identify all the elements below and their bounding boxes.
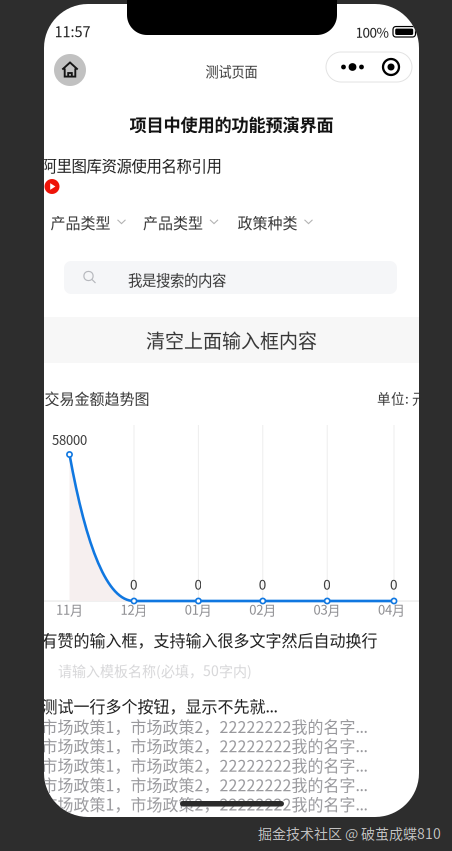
staticText: 11:57 bbox=[54, 20, 90, 41]
staticText: 有赞的输入框，支持输入很多文字然后自动换行 bbox=[41, 628, 377, 651]
button[interactable]: 产品类型 bbox=[50, 209, 126, 235]
staticText: 请输入模板名称(必填，50字内) bbox=[58, 660, 252, 680]
staticText: 测试一行多个按钮，显示不先就... bbox=[41, 694, 277, 717]
staticText: 12月 bbox=[120, 600, 147, 618]
staticText: 市场政策1，市场政策2，22222222我的名字... bbox=[41, 753, 367, 776]
staticText: 市场政策1，市场政策2，22222222我的名字... bbox=[41, 792, 367, 815]
staticText: 0 bbox=[390, 574, 397, 593]
staticText: 市场政策1，市场政策2，22222222我的名字... bbox=[41, 714, 367, 737]
button[interactable]: 阿里图库资源使用名称引用 bbox=[41, 154, 221, 176]
staticText: 项目中使用的功能预演界面 bbox=[129, 111, 333, 136]
staticText: 04月 bbox=[378, 600, 405, 618]
button[interactable]: Home bbox=[54, 54, 86, 86]
staticText: 单位: 元 bbox=[377, 388, 426, 407]
staticText: 0 bbox=[194, 574, 201, 593]
staticText: 测试页面 bbox=[205, 61, 257, 80]
staticText: 我是搜索的内容 bbox=[128, 269, 226, 290]
staticText: 产品类型 bbox=[143, 211, 203, 233]
button[interactable]: 清空上面输入框内容 bbox=[44, 317, 419, 363]
staticText: 100% bbox=[355, 22, 388, 41]
button[interactable]: 产品类型 bbox=[143, 209, 219, 235]
staticText: 11月 bbox=[56, 600, 83, 618]
staticText: 0 bbox=[323, 574, 330, 593]
staticText: 03月 bbox=[314, 600, 341, 618]
staticText: 市场政策1，市场政策2，22222222我的名字... bbox=[41, 734, 367, 757]
button[interactable]: 政策种类 bbox=[237, 209, 313, 235]
staticText: 交易金额趋势图 bbox=[44, 387, 149, 409]
staticText: 01月 bbox=[185, 600, 212, 618]
staticText: 阿里图库资源使用名称引用 bbox=[41, 154, 221, 176]
staticText: 0 bbox=[130, 574, 137, 593]
staticText: 0 bbox=[259, 574, 266, 593]
staticText: 02月 bbox=[249, 600, 276, 618]
staticText: 掘金技术社区 @ 破茧成蝶810 bbox=[258, 823, 441, 843]
staticText: 产品类型 bbox=[50, 211, 110, 233]
staticText: 清空上面输入框内容 bbox=[146, 326, 317, 354]
button[interactable]: More options and close bbox=[326, 52, 412, 82]
staticText: 58000 bbox=[52, 430, 87, 449]
staticText: 市场政策1，市场政策2，22222222我的名字... bbox=[41, 773, 367, 796]
staticText: 政策种类 bbox=[237, 211, 297, 233]
